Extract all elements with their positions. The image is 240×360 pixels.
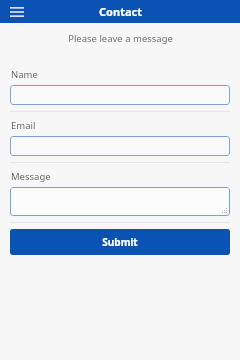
staticText: Name	[11, 68, 38, 81]
button[interactable]	[10, 187, 230, 216]
staticText: Email	[11, 119, 36, 132]
staticText: Please leave a message	[68, 32, 173, 45]
staticText: Submit	[102, 235, 138, 249]
staticText: Contact	[99, 4, 142, 19]
button[interactable]: Open navigation menu	[8, 3, 26, 21]
staticText: Message	[11, 170, 51, 183]
button[interactable]	[10, 136, 230, 156]
button[interactable]	[10, 85, 230, 105]
button[interactable]: Submit	[10, 229, 230, 255]
